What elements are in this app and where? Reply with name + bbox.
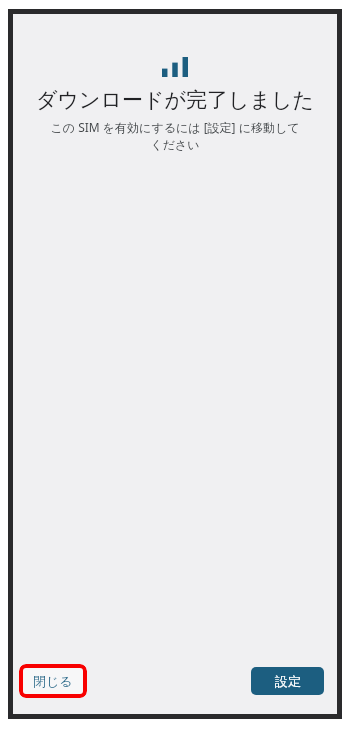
staticText: 設定 <box>275 673 301 689</box>
staticText: 閉じる <box>33 673 73 689</box>
other: Signal strength <box>162 57 188 77</box>
button[interactable]: 設定 <box>251 667 324 695</box>
staticText: この SIM を有効にするには [設定] に移動して ください <box>27 119 323 153</box>
staticText: ダウンロードが完了しました <box>19 87 331 113</box>
button[interactable]: 閉じる <box>23 668 83 694</box>
